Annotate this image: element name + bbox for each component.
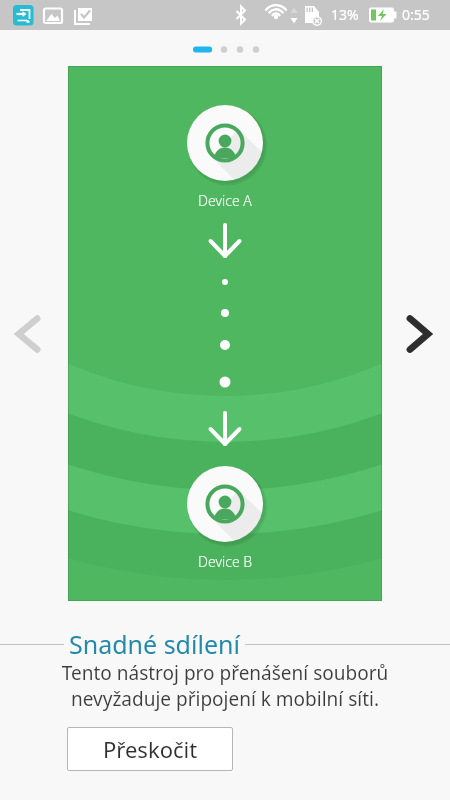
staticText: Device B [198, 552, 253, 571]
staticText: Tento nástroj pro přenášení souborů nevy… [0, 660, 450, 711]
staticText: Snadné sdílení [69, 627, 240, 661]
staticText: 0:55 [402, 5, 430, 24]
button[interactable]: Přeskočit [67, 727, 233, 771]
staticText: Přeskočit [103, 734, 198, 764]
button[interactable]: Next page [381, 289, 450, 379]
staticText: Device A [198, 191, 252, 210]
button[interactable]: Previous page [0, 289, 67, 379]
staticText: 13% [331, 5, 359, 24]
